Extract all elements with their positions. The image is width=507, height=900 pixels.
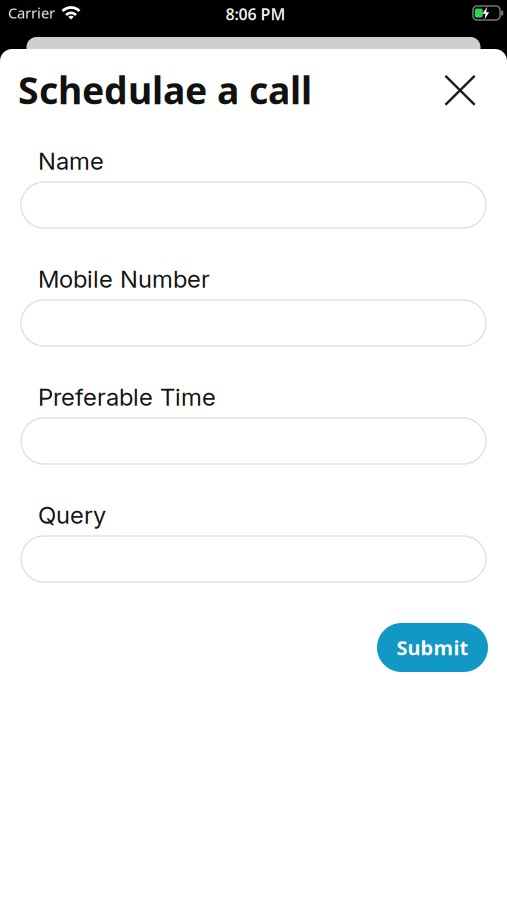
button[interactable]: Query (21, 536, 486, 582)
staticText: Name (38, 146, 104, 175)
staticText: Mobile Number (38, 264, 210, 293)
button[interactable]: Name (21, 182, 486, 228)
button[interactable]: Mobile Number (21, 300, 486, 346)
staticText: 8:06 PM (225, 3, 285, 25)
staticText: Submit (396, 634, 468, 661)
staticText: Preferable Time (38, 382, 216, 411)
staticText: Schedulae a call (18, 65, 312, 115)
button[interactable]: Close (444, 75, 475, 106)
button[interactable]: Submit (377, 623, 488, 672)
button[interactable]: Preferable Time (21, 418, 486, 464)
staticText: Carrier (8, 3, 55, 22)
staticText: Query (38, 500, 106, 529)
